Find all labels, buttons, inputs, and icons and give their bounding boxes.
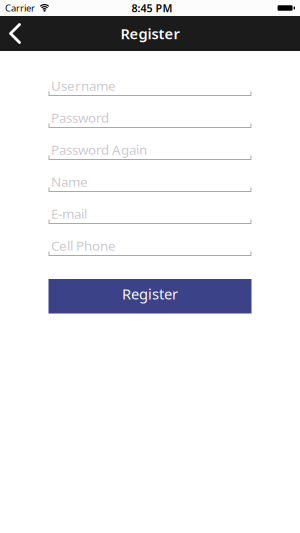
staticText: Carrier xyxy=(5,2,35,14)
staticText: E-mail xyxy=(51,205,87,222)
button[interactable]: Cell Phone xyxy=(48,224,251,256)
button[interactable]: Back xyxy=(0,16,35,51)
staticText: Username xyxy=(51,77,116,94)
staticText: 8:45 PM xyxy=(131,1,172,15)
button[interactable]: Register xyxy=(48,279,251,313)
staticText: Register xyxy=(120,24,179,43)
button[interactable]: Password xyxy=(48,96,251,128)
button[interactable]: Name xyxy=(48,160,251,192)
staticText: Register xyxy=(122,284,178,303)
button[interactable]: Username xyxy=(48,64,251,96)
staticText: Name xyxy=(51,173,88,190)
staticText: Cell Phone xyxy=(51,237,116,254)
staticText: Password Again xyxy=(51,141,147,158)
button[interactable]: Password Again xyxy=(48,128,251,160)
staticText: Password xyxy=(51,109,109,126)
button[interactable]: E-mail xyxy=(48,192,251,224)
